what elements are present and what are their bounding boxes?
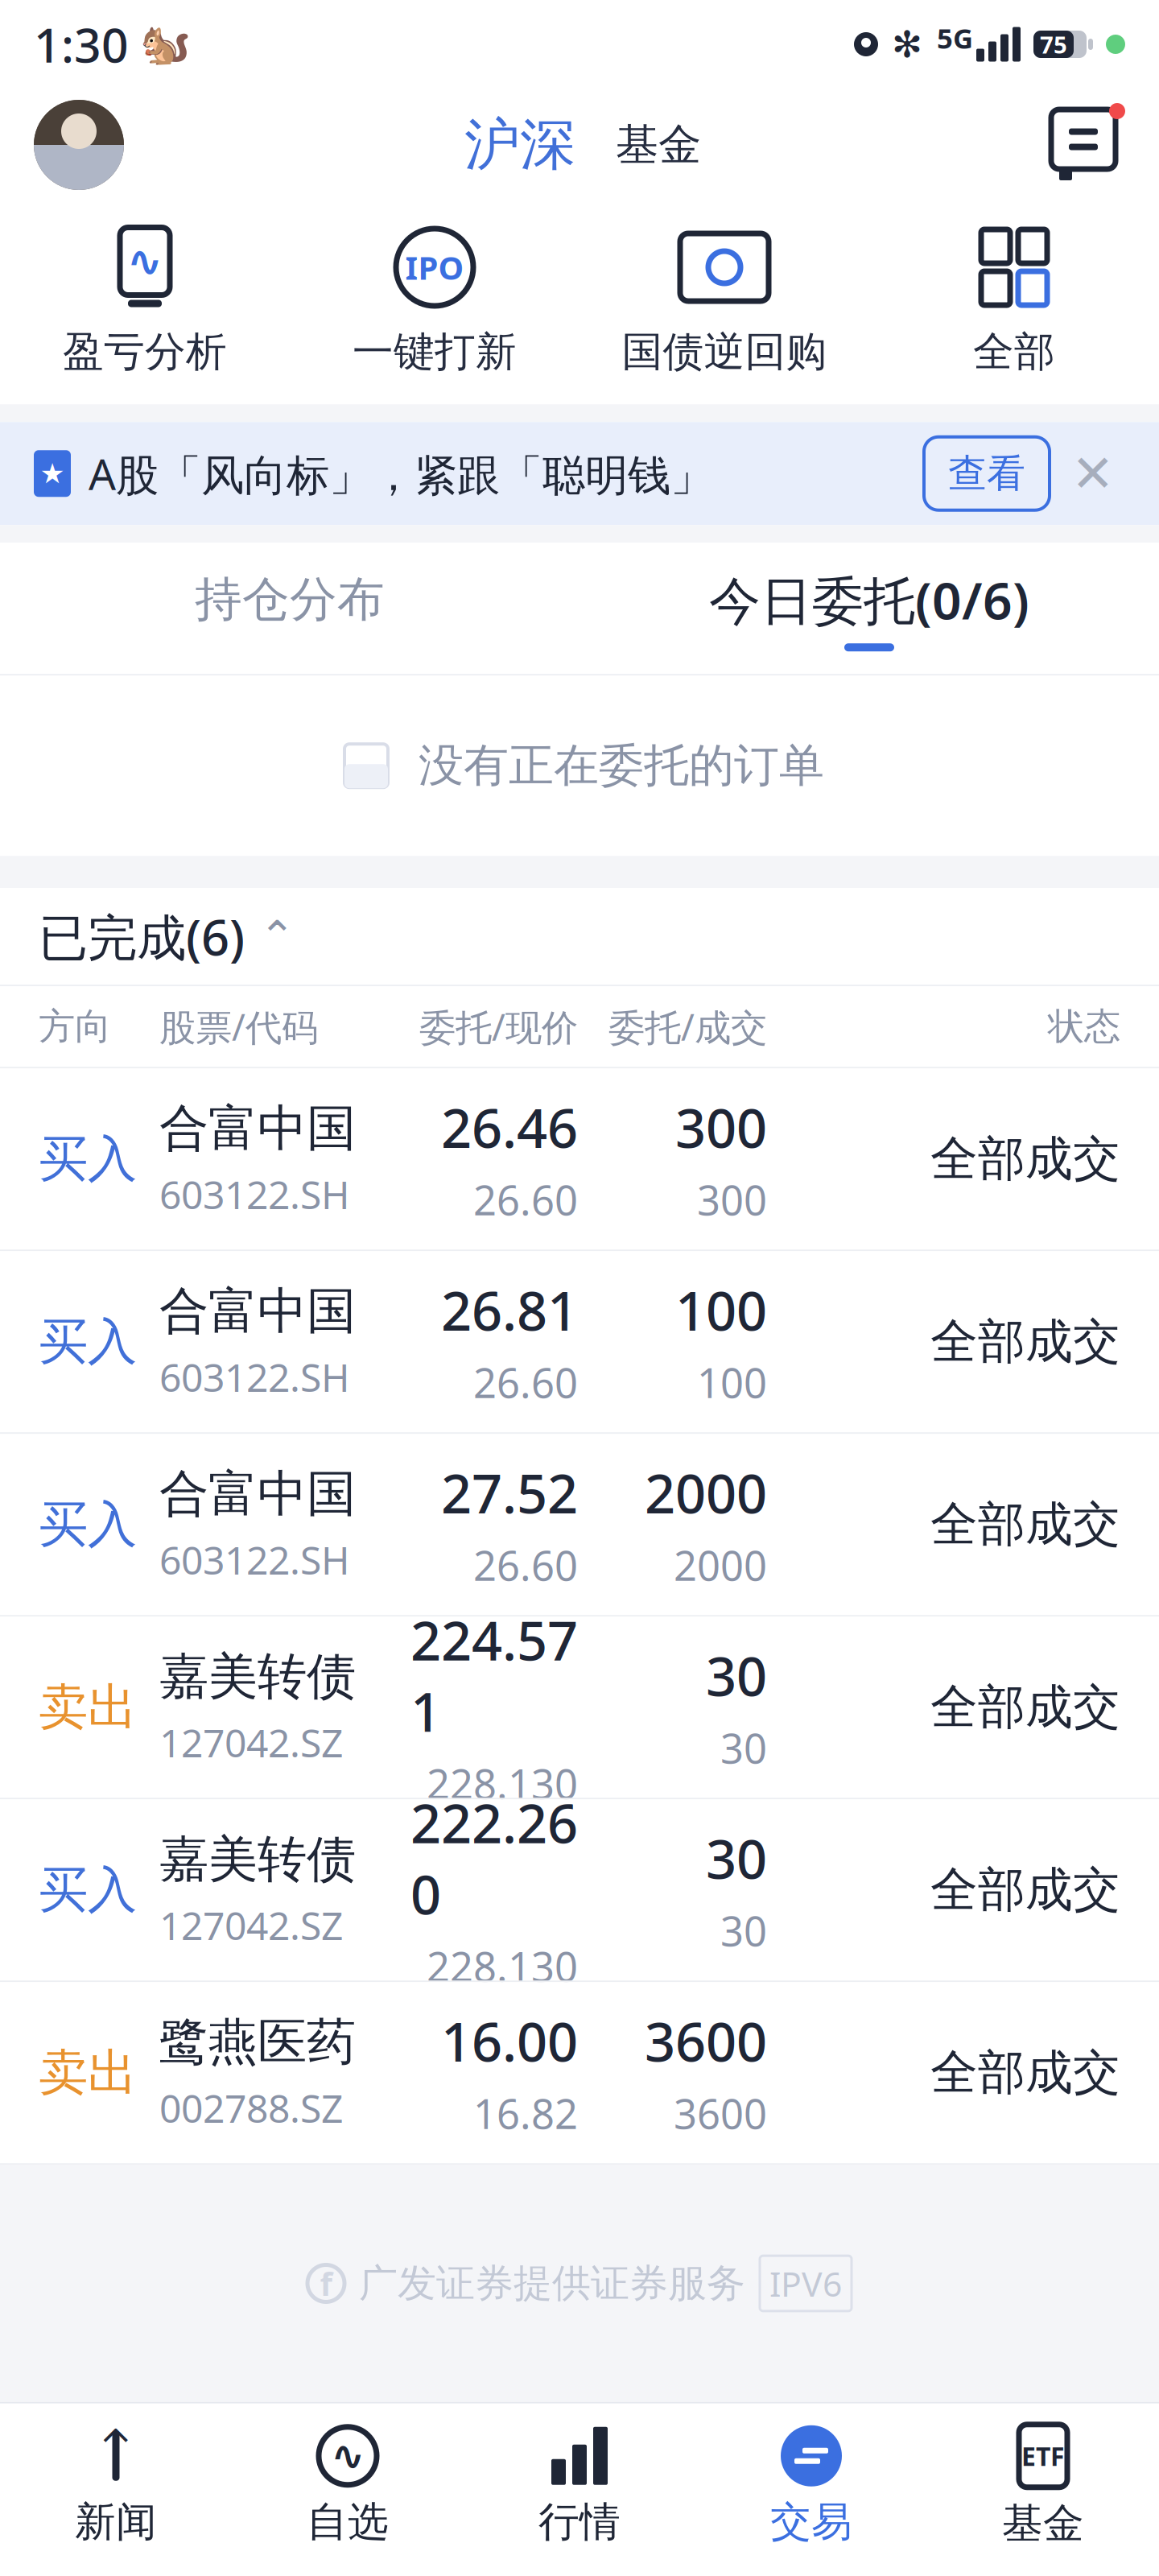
staticText: 26.60 [473,1538,578,1592]
staticText: 603122.SH [159,1534,350,1585]
staticText: ∿ [331,2433,365,2479]
staticText: 委托/成交 [608,1002,767,1051]
staticText: 30 [706,1822,767,1894]
staticText: 228.130 [427,1939,578,1993]
button[interactable]: 买入 [0,1799,1159,1982]
staticText: IPV6 [769,2261,842,2306]
button[interactable]: 买入 [0,1434,1159,1617]
staticText: 002788.SZ [159,2082,343,2133]
staticText: 嘉美转债 [159,1829,356,1890]
button[interactable]: 查看 [924,437,1050,510]
staticText: ETF [1021,2439,1065,2473]
staticText: 没有正在委托的订单 [419,738,824,793]
button[interactable]: 交易 [695,2426,927,2547]
button[interactable]: 全部 [869,225,1159,377]
button[interactable]: 行情 [464,2426,695,2547]
button[interactable]: 持仓分布 [0,548,579,669]
staticText: 26.46 [441,1091,578,1163]
staticText: 全部成交 [930,1678,1120,1736]
staticText: 224.571 [410,1604,578,1747]
staticText: 5G [937,19,973,56]
button[interactable]: ∿ [0,225,290,377]
staticText: 30 [720,1903,767,1957]
staticText: 26.60 [473,1172,578,1226]
staticText: 买入 [39,1311,137,1372]
staticText: 合富中国 [159,1098,356,1159]
staticText: 买入 [39,1129,137,1189]
staticText: 100 [675,1274,767,1345]
button[interactable]: ETF [927,2424,1159,2549]
staticText: 3600 [645,2005,767,2076]
staticText: 26.60 [473,1355,578,1409]
staticText: IPO [405,246,464,289]
staticText: 已完成(6) [39,904,245,969]
staticText: 26.81 [441,1274,578,1345]
button[interactable]: 卖出 [0,1617,1159,1799]
button[interactable]: 国债逆回购 [579,225,869,377]
staticText: 2000 [645,1457,767,1528]
button[interactable]: 基金 [616,118,701,171]
button[interactable]: 买入 [0,1068,1159,1251]
staticText: ⌃ [259,912,295,961]
staticText: 方向 [39,1004,111,1049]
staticText: 全部 [973,327,1055,377]
staticText: 127042.SZ [159,1717,343,1768]
staticText: 股票/代码 [159,1002,318,1051]
button[interactable]: 今日委托(0/6) [579,543,1159,674]
staticText: ✕ [1071,444,1115,503]
staticText: 国债逆回购 [622,327,827,377]
staticText: ★ [40,458,65,489]
staticText: 今日委托(0/6) [709,565,1029,634]
staticText: 3600 [674,2086,767,2140]
staticText: ✻ [892,24,922,65]
staticText: 全部成交 [930,2044,1120,2102]
staticText: ∿ [127,237,163,286]
staticText: 新闻 [75,2497,157,2547]
staticText: 买入 [39,1494,137,1555]
staticText: f [320,2262,332,2305]
staticText: 盈亏分析 [63,327,227,377]
staticText: 自选 [307,2497,389,2547]
staticText: 交易 [770,2497,852,2547]
staticText: 16.82 [473,2086,578,2140]
button[interactable]: Profile [34,100,124,190]
staticText: 1:30 [34,13,129,76]
staticText: 沪深 [464,111,575,179]
staticText: 603122.SH [159,1168,350,1220]
staticText: 持仓分布 [195,571,385,629]
staticText: 广发证券提供证券服务 [359,2260,745,2307]
staticText: 卖出 [39,1677,137,1738]
button[interactable]: ∿ [232,2426,464,2547]
staticText: 全部成交 [930,1861,1120,1919]
staticText: 16.00 [441,2005,578,2076]
button[interactable]: IPO [290,225,579,377]
staticText: 🐿️ [140,21,191,68]
staticText: ↑ [91,2418,141,2486]
staticText: 127042.SZ [159,1899,343,1951]
staticText: 全部成交 [930,1130,1120,1188]
button[interactable]: 沪深 [464,111,575,179]
button[interactable]: Close [1061,441,1125,506]
staticText: 基金 [1002,2499,1084,2549]
staticText: 全部成交 [930,1313,1120,1371]
staticText: 一键打新 [353,327,517,377]
staticText: A股「风向标」，紧跟「聪明钱」 [89,445,713,502]
staticText: 卖出 [39,2042,137,2103]
staticText: 603122.SH [159,1351,350,1402]
staticText: 全部成交 [930,1495,1120,1553]
button[interactable]: ↑ [0,2426,232,2547]
button[interactable]: 买入 [0,1251,1159,1434]
staticText: 委托/现价 [419,1002,578,1051]
button[interactable]: Messages [1041,103,1125,187]
staticText: 合富中国 [159,1281,356,1342]
button[interactable]: 已完成(6) [0,888,1159,985]
staticText: 300 [697,1172,767,1226]
staticText: 228.130 [427,1756,578,1810]
staticText: 2000 [674,1538,767,1592]
staticText: 27.52 [441,1457,578,1528]
staticText: 30 [706,1640,767,1711]
staticText: 合富中国 [159,1464,356,1524]
staticText: 基金 [616,118,701,171]
staticText: 行情 [538,2497,621,2547]
button[interactable]: 卖出 [0,1982,1159,2165]
